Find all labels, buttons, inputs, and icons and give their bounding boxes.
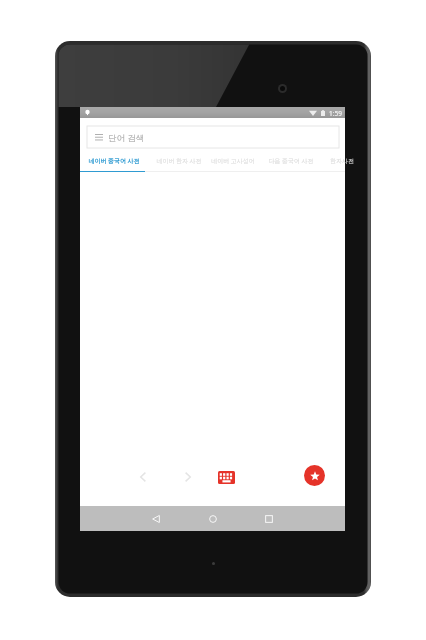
button[interactable]: Back: [146, 506, 166, 531]
staticText: 네이버 한자 사전: [156, 157, 202, 165]
button[interactable]: Forward: [178, 467, 198, 487]
button[interactable]: 네이버 고사성어: [207, 152, 259, 172]
staticText: 다음 중국어 사전: [268, 157, 314, 165]
button[interactable]: Keyboard: [216, 467, 236, 487]
button[interactable]: 다음 중국어 사전: [263, 152, 319, 172]
button[interactable]: Back: [133, 467, 153, 487]
staticText: 네이버 중국어 사전: [88, 157, 140, 165]
button[interactable]: 네이버 한자 사전: [151, 152, 207, 172]
staticText: 단어 검색: [108, 132, 145, 144]
button[interactable]: 네이버 중국어 사전: [81, 152, 146, 172]
button[interactable]: Home: [203, 506, 223, 531]
staticText: 1:59: [329, 109, 342, 118]
staticText: 한자사전: [330, 157, 354, 165]
staticText: 네이버 고사성어: [211, 157, 255, 165]
button[interactable]: Recent apps: [259, 506, 279, 531]
button[interactable]: Add to favorites: [304, 465, 325, 486]
button[interactable]: 한자사전: [322, 152, 362, 172]
button[interactable]: 단어 검색: [87, 126, 339, 148]
